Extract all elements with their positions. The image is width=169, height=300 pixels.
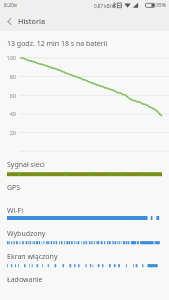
button[interactable]: GPS: [0, 179, 169, 199]
staticText: GPS: [7, 183, 21, 193]
button[interactable]: Wybudzony: [0, 225, 169, 245]
button[interactable]: Back: [0, 11, 19, 31]
staticText: 60: [0, 92, 16, 99]
staticText: Ekran włączony: [7, 252, 58, 262]
staticText: Ładowanie: [7, 275, 43, 285]
staticText: Wybudzony: [7, 229, 46, 239]
staticText: 8:20: [4, 2, 14, 9]
button[interactable]: Ekran włączony: [0, 248, 169, 268]
staticText: Wi-Fi: [7, 206, 24, 216]
staticText: Historia: [18, 16, 46, 26]
staticText: Sygnał sieci: [7, 160, 45, 170]
staticText: 35%: [156, 2, 166, 9]
button[interactable]: Sygnał sieci: [0, 156, 169, 176]
staticText: 0,87 kB/s: [94, 3, 114, 9]
staticText: 20: [0, 129, 16, 136]
staticText: 13 godz. 12 min 18 s na baterii: [7, 39, 108, 49]
staticText: 40: [0, 110, 16, 117]
button[interactable]: Wi-Fi: [0, 202, 169, 222]
button[interactable]: Ładowanie: [0, 271, 169, 291]
staticText: 100: [0, 54, 16, 61]
staticText: 80: [0, 73, 16, 80]
